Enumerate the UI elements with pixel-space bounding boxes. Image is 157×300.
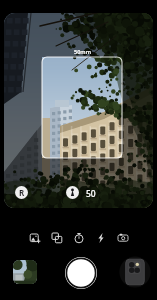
button[interactable]: Camera mode — [115, 230, 131, 246]
staticText: R — [19, 187, 25, 198]
button[interactable]: Shutter — [65, 257, 97, 289]
button[interactable]: Exposure — [66, 186, 79, 199]
button[interactable]: Switch camera — [120, 256, 150, 288]
button[interactable]: Gallery — [13, 260, 37, 284]
button[interactable]: Timer — [71, 230, 87, 246]
button[interactable]: RAW — [15, 186, 28, 199]
staticText: 50 — [86, 188, 96, 200]
button[interactable]: Multi exposure — [49, 230, 65, 246]
button[interactable]: Flash — [93, 230, 109, 246]
staticText: 50mm — [74, 48, 91, 55]
button[interactable]: Photo styles — [27, 230, 43, 246]
